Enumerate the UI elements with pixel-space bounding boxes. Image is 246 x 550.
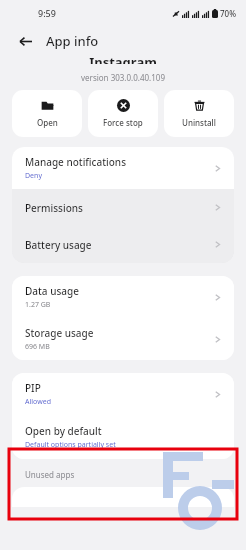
staticText: Deny	[25, 171, 42, 181]
staticText: Battery usage	[25, 238, 92, 252]
staticText: 696 MB	[25, 342, 50, 352]
staticText: PIP	[25, 381, 41, 395]
staticText: version 303.0.0.40.109	[81, 72, 165, 83]
staticText: Allowed	[25, 397, 51, 407]
button[interactable]: Back	[12, 28, 38, 54]
staticText: Data usage	[25, 284, 79, 298]
staticText: Storage usage	[25, 326, 94, 340]
staticText: Force stop	[103, 117, 143, 128]
staticText: Open by default	[25, 424, 102, 438]
staticText: 70%	[220, 8, 236, 19]
button[interactable]: Storage usage	[12, 318, 234, 360]
button[interactable]: Open	[12, 90, 82, 137]
button[interactable]: PIP	[12, 373, 234, 415]
button[interactable]: Uninstall	[164, 90, 234, 137]
staticText: Manage notifications	[25, 155, 126, 169]
staticText: Default options partially set	[25, 440, 116, 450]
staticText: Unused apps	[25, 469, 75, 480]
button[interactable]: Manage notifications	[12, 147, 234, 189]
staticText: 1.27 GB	[25, 300, 51, 310]
staticText: App info	[46, 32, 99, 50]
staticText: Uninstall	[182, 117, 216, 128]
staticText: Instagram	[89, 53, 157, 64]
staticText: Open	[37, 117, 58, 128]
staticText: Permissions	[25, 201, 83, 215]
button[interactable]: Open by default	[12, 415, 234, 459]
button[interactable]: Permissions	[12, 189, 234, 226]
button[interactable]: Force stop	[88, 90, 158, 137]
button[interactable]: Battery usage	[12, 226, 234, 263]
button[interactable]: Data usage	[12, 276, 234, 318]
staticText: 9:59	[38, 7, 56, 19]
